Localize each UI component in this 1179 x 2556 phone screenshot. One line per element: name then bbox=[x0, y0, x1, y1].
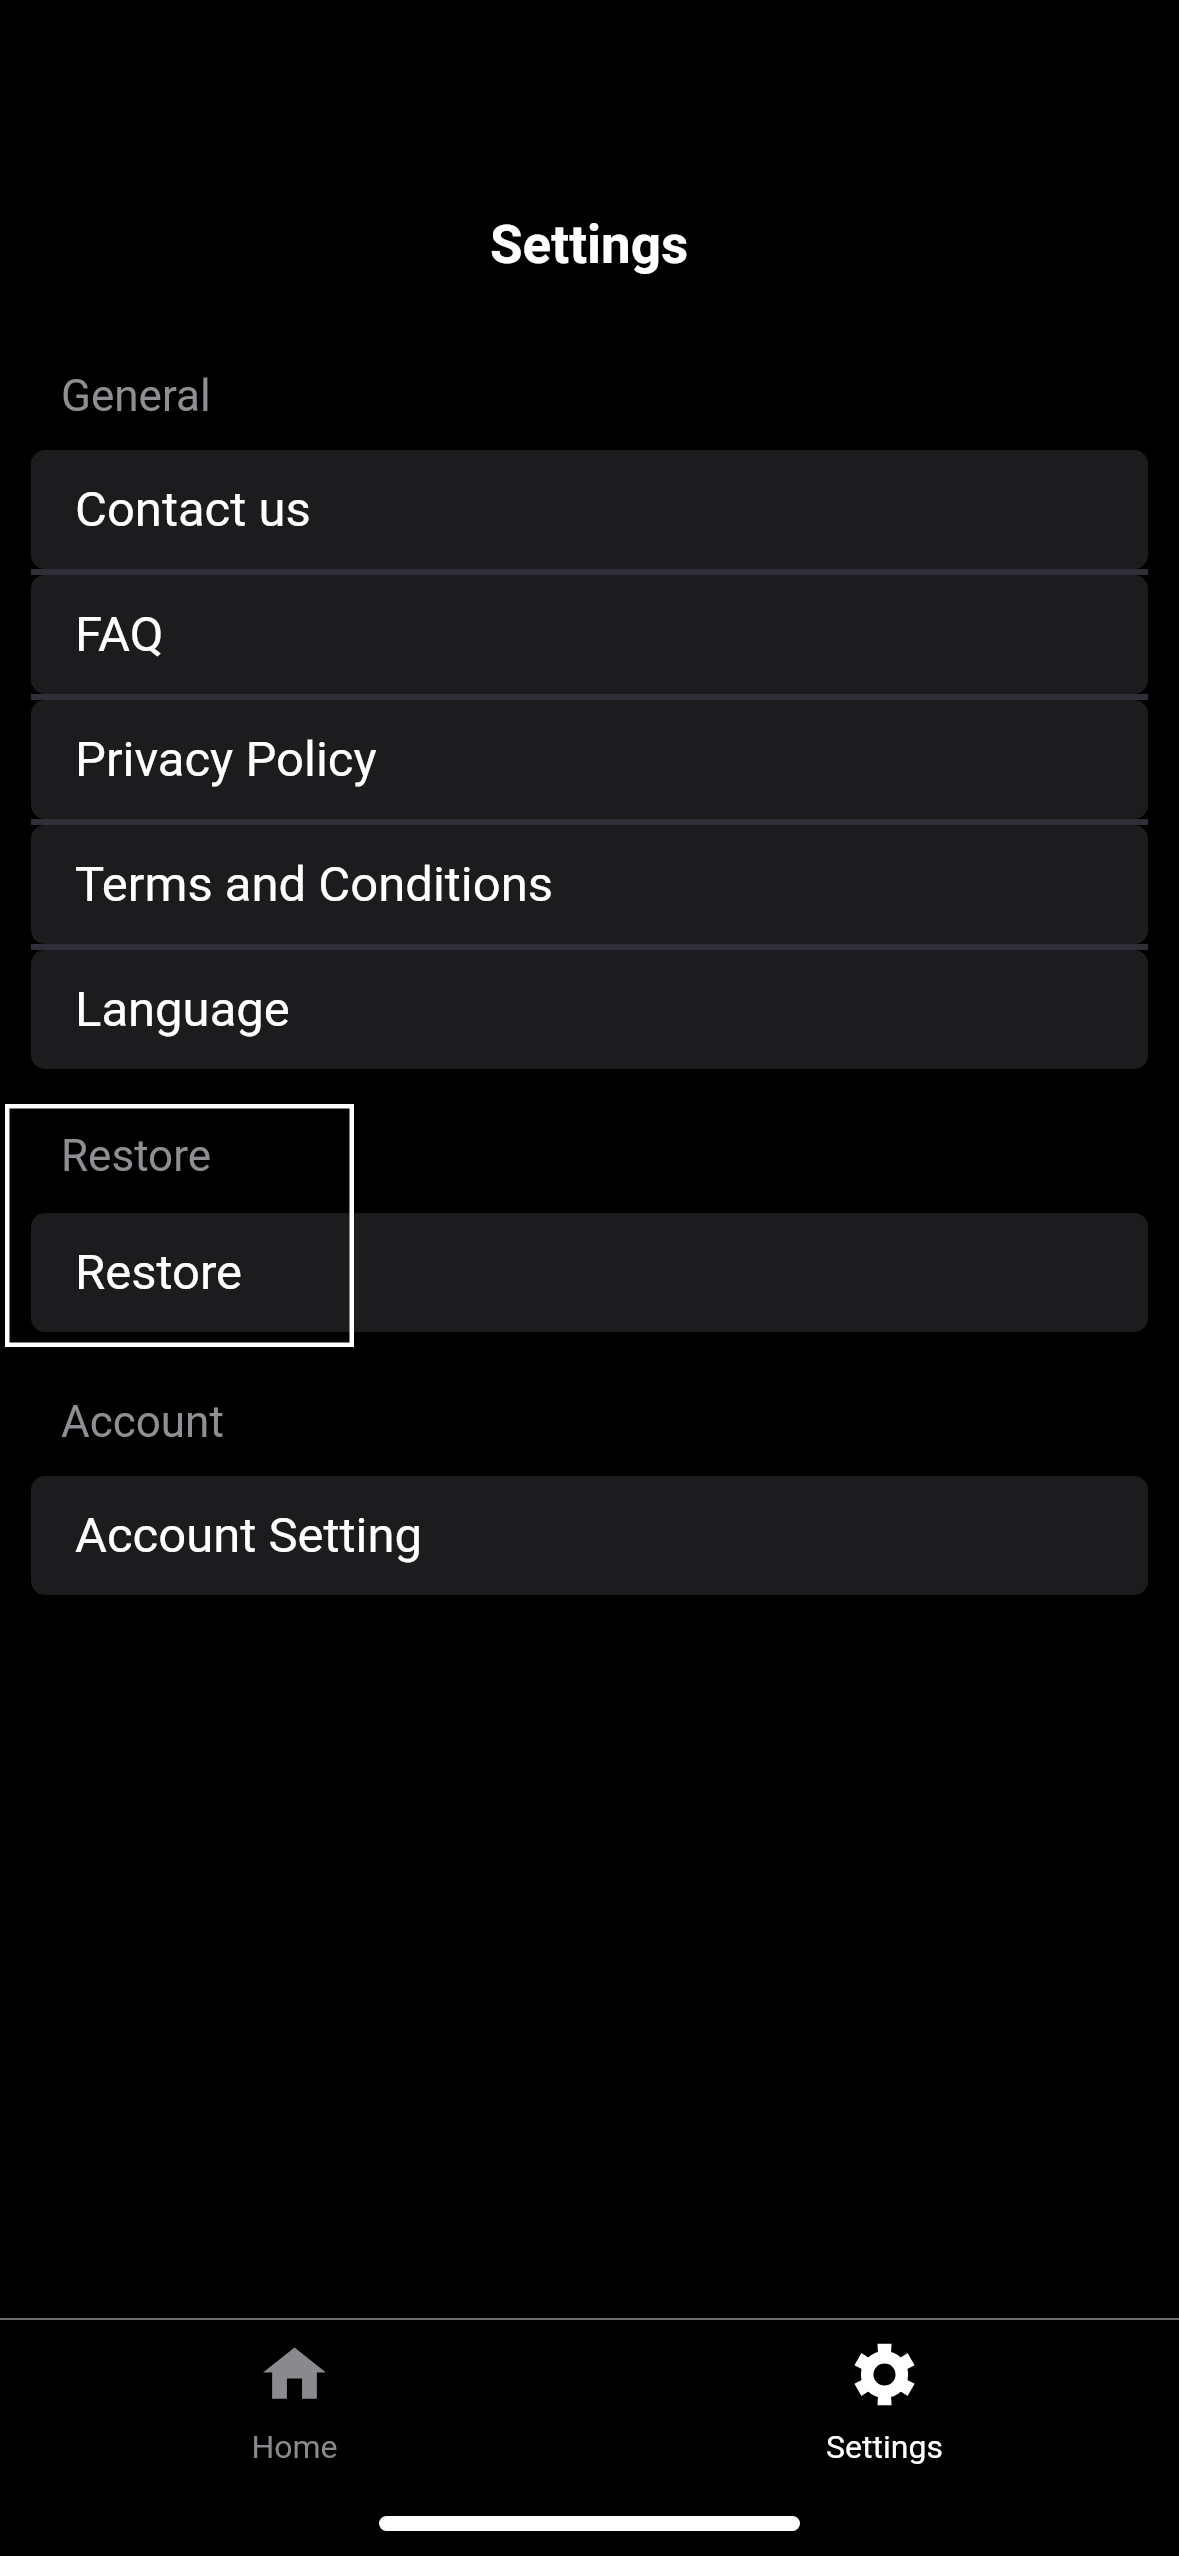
staticText: Restore bbox=[75, 1244, 243, 1301]
staticText: Contact us bbox=[75, 481, 311, 538]
staticText: Restore bbox=[61, 1130, 212, 1182]
button[interactable]: FAQ bbox=[31, 575, 1148, 694]
button[interactable]: Settings bbox=[589, 2320, 1179, 2500]
button[interactable]: Restore bbox=[31, 1213, 1148, 1332]
button[interactable]: Account Setting bbox=[31, 1476, 1148, 1595]
staticText: Settings bbox=[490, 214, 689, 276]
staticText: Settings bbox=[826, 2428, 943, 2466]
staticText: Terms and Conditions bbox=[75, 856, 554, 913]
button[interactable]: Home bbox=[0, 2320, 589, 2500]
staticText: General bbox=[61, 370, 211, 422]
staticText: Home bbox=[251, 2428, 338, 2466]
button[interactable]: Privacy Policy bbox=[31, 700, 1148, 819]
staticText: FAQ bbox=[75, 606, 164, 663]
button[interactable]: Language bbox=[31, 950, 1148, 1069]
button[interactable]: Contact us bbox=[31, 450, 1148, 569]
staticText: Account bbox=[61, 1396, 224, 1448]
button[interactable]: Terms and Conditions bbox=[31, 825, 1148, 944]
staticText: Account Setting bbox=[75, 1507, 423, 1564]
staticText: Privacy Policy bbox=[75, 731, 377, 788]
staticText: Language bbox=[75, 981, 290, 1038]
